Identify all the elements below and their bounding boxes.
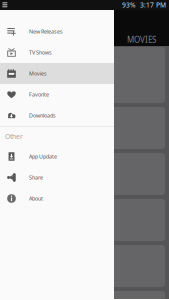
staticText: New Releases [29,28,63,35]
staticText: Movies [29,70,47,77]
staticText: About [29,195,43,202]
staticText: Other [5,132,23,141]
button[interactable]: TV Shows [0,42,114,63]
staticText: App Update [29,153,57,160]
staticText: TV Shows [29,49,52,56]
button[interactable]: App Update [0,146,114,167]
staticText: Favorite [29,91,49,98]
button[interactable]: Favorite [0,84,114,105]
staticText: Downloads [29,112,56,119]
button[interactable]: Downloads [0,105,114,126]
button[interactable]: New Releases [0,21,114,42]
button[interactable]: About [0,188,114,209]
staticText: Share [29,174,43,181]
button[interactable]: Share [0,167,114,188]
button[interactable]: Movies [0,63,114,84]
staticText: 93% 3:17 PM [122,1,166,9]
staticText: MOVIES [127,34,156,45]
